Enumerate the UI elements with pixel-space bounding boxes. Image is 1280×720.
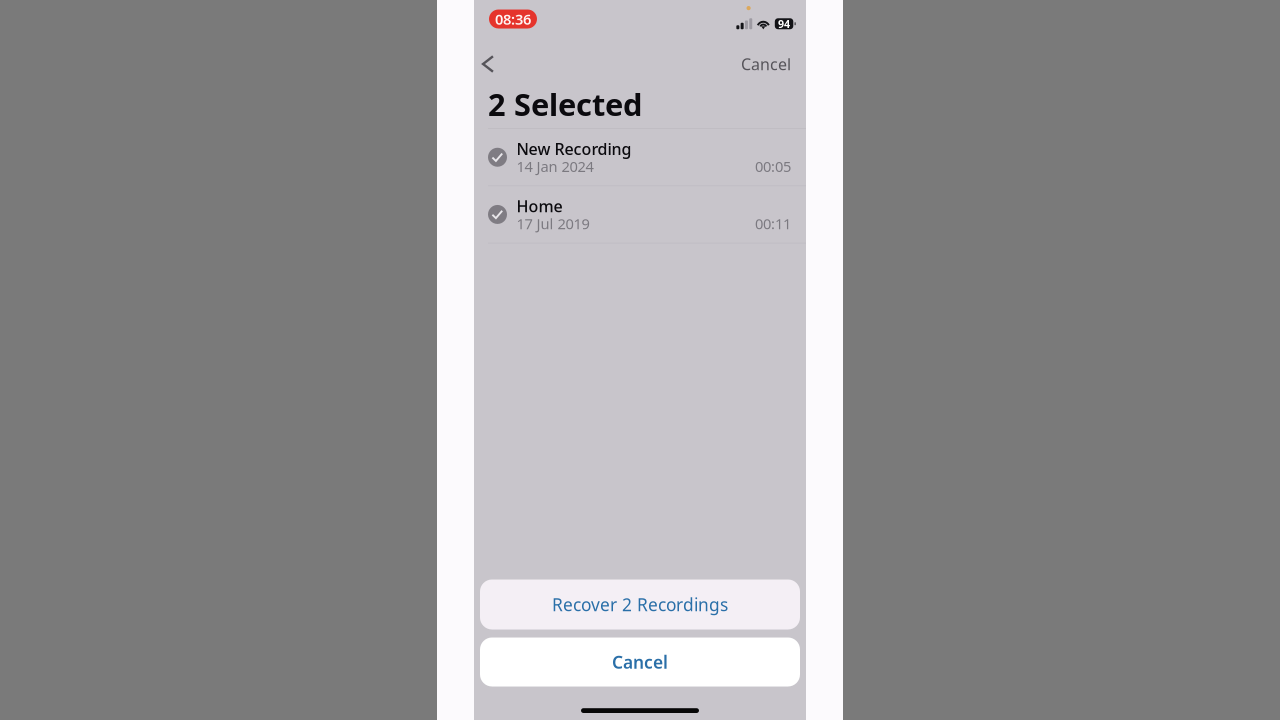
staticText: 14 Jan 2024 bbox=[516, 156, 593, 176]
button[interactable]: Cancel bbox=[741, 49, 791, 79]
staticText: 17 Jul 2019 bbox=[516, 214, 589, 233]
button[interactable]: Recover 2 Recordings bbox=[480, 579, 800, 629]
staticText: 94 bbox=[778, 17, 790, 31]
button[interactable]: Back bbox=[474, 49, 502, 79]
staticText: Cancel bbox=[741, 53, 791, 75]
staticText: 08:36 bbox=[495, 9, 531, 29]
staticText: Recover 2 Recordings bbox=[552, 593, 728, 616]
staticText: Home bbox=[516, 195, 562, 216]
button[interactable]: New Recording bbox=[474, 129, 806, 185]
staticText: 00:11 bbox=[755, 214, 791, 233]
staticText: 2 Selected bbox=[488, 84, 642, 124]
button[interactable]: Home bbox=[474, 186, 806, 243]
staticText: Cancel bbox=[612, 650, 668, 673]
button[interactable]: Cancel bbox=[480, 637, 800, 686]
staticText: New Recording bbox=[516, 138, 631, 159]
staticText: 00:05 bbox=[755, 156, 791, 176]
